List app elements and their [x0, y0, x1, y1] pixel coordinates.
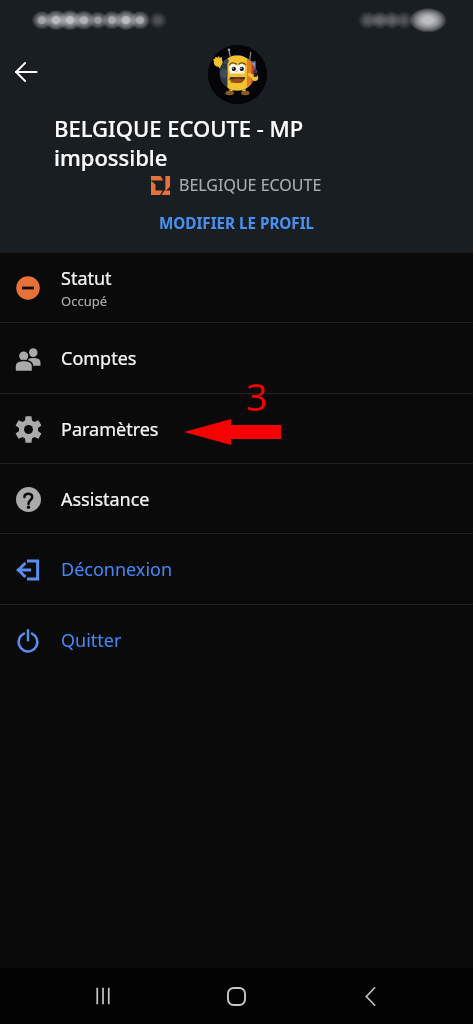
staticText: Occupé	[61, 292, 107, 310]
staticText: Paramètres	[61, 417, 159, 442]
staticText: Comptes	[61, 346, 137, 371]
button[interactable]: Back	[342, 972, 398, 1020]
button[interactable]: Back	[2, 48, 50, 96]
button[interactable]: Profile picture	[208, 45, 267, 104]
staticText: 3	[246, 370, 268, 422]
button[interactable]: Quitter	[0, 605, 473, 676]
staticText: Quitter	[61, 628, 122, 653]
button[interactable]: Déconnexion	[0, 534, 473, 605]
button[interactable]: MODIFIER LE PROFIL	[145, 208, 329, 239]
button[interactable]: Statut	[0, 253, 473, 323]
button[interactable]: Home	[208, 972, 264, 1020]
staticText: Déconnexion	[61, 557, 173, 582]
button[interactable]: Paramètres	[0, 394, 473, 464]
staticText: Assistance	[61, 487, 150, 512]
staticText: MODIFIER LE PROFIL	[159, 213, 315, 234]
staticText: BELGIQUE ECOUTE - MP impossible	[54, 113, 354, 173]
staticText: Statut	[61, 266, 112, 291]
button[interactable]: Comptes	[0, 323, 473, 394]
staticText: BELGIQUE ECOUTE	[179, 174, 322, 196]
button[interactable]: Assistance	[0, 464, 473, 534]
button[interactable]: Recent apps	[75, 972, 131, 1020]
